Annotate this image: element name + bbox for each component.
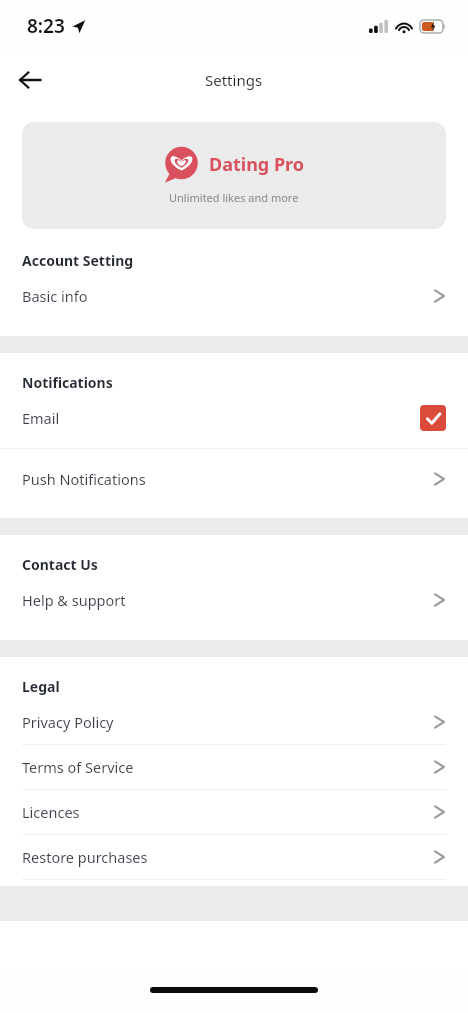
staticText: Legal <box>22 677 60 696</box>
button[interactable]: Licences <box>0 790 468 834</box>
staticText: Notifications <box>22 373 113 392</box>
button[interactable]: Terms of Service <box>0 745 468 789</box>
button[interactable]: Back <box>8 58 52 102</box>
button[interactable]: Privacy Policy <box>0 700 468 744</box>
button[interactable]: Push Notifications <box>0 457 468 501</box>
button[interactable]: Email <box>0 396 468 440</box>
staticText: 8:23 <box>27 13 65 39</box>
staticText: Restore purchases <box>22 847 148 867</box>
staticText: Basic info <box>22 286 88 306</box>
staticText: Help & support <box>22 590 126 610</box>
staticText: Privacy Policy <box>22 712 114 732</box>
button[interactable]: Basic info <box>0 274 468 318</box>
staticText: Account Setting <box>22 251 134 270</box>
staticText: Licences <box>22 802 80 822</box>
other: Email notifications enabled <box>420 405 446 431</box>
staticText: Dating Pro <box>209 152 305 177</box>
staticText: Email <box>22 408 60 428</box>
staticText: Contact Us <box>22 555 98 574</box>
staticText: Settings <box>205 70 263 90</box>
button[interactable]: Help & support <box>0 578 468 622</box>
button[interactable]: Dating Pro <box>22 122 446 229</box>
staticText: Unlimited likes and more <box>169 190 299 205</box>
staticText: Terms of Service <box>22 757 134 777</box>
button[interactable]: Restore purchases <box>0 835 468 879</box>
staticText: Push Notifications <box>22 469 146 489</box>
